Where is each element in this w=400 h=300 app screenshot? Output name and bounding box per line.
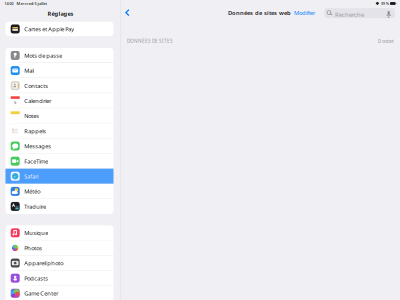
button[interactable]: Game Center [5,286,113,300]
staticText: Cartes et Apple Pay [24,25,74,33]
staticText: 39 % [381,1,389,6]
staticText: Rappels [24,127,46,135]
button[interactable]: Podcasts [5,271,113,286]
button[interactable]: Cartes et Apple Pay [5,22,113,36]
staticText: Photos [24,244,42,252]
staticText: Messages [24,142,51,150]
staticText: Podcasts [24,274,48,282]
staticText: Musique [24,229,48,237]
button[interactable]: FaceTime [5,154,113,169]
button[interactable]: Musique [5,225,113,240]
staticText: Modifier [294,9,315,17]
staticText: Données de sites web [228,9,291,17]
staticText: Game Center [24,289,58,297]
button[interactable]: Traduire [5,199,113,214]
staticText: Mail [24,67,34,74]
staticText: Contacts [24,82,48,89]
staticText: 0 octet [378,37,394,44]
staticText: Safari [24,172,38,180]
button[interactable]: Appareil photo [5,255,113,271]
button[interactable]: Notes [5,108,113,123]
staticText: Mots de passe [24,51,62,59]
button[interactable]: Safari [5,169,113,184]
button[interactable]: Retour [122,6,133,19]
staticText: Notes [24,112,39,120]
staticText: Calendrier [24,97,51,105]
button[interactable]: Mail [5,63,113,78]
button[interactable]: Photos [5,240,113,255]
staticText: Traduire [24,202,46,210]
staticText: Mercredi 5 juillet [16,1,46,6]
button[interactable]: Rappels [5,123,113,138]
button[interactable]: Mots de passe [5,48,113,63]
button[interactable]: 5 [5,93,113,108]
button[interactable]: Rechercher [324,8,395,18]
staticText: Réglages [47,10,73,17]
staticText: 5 [14,100,16,105]
staticText: 14:02 [4,1,13,6]
button[interactable]: Météo [5,184,113,199]
button[interactable]: Modifier [291,7,318,19]
staticText: Appareil photo [24,259,63,267]
staticText: Météo [24,187,40,195]
button[interactable]: Contacts [5,78,113,93]
staticText: DONNÉES DE SITES [127,38,173,44]
button[interactable]: Messages [5,138,113,154]
staticText: FaceTime [24,157,48,165]
staticText: Recherche [335,10,364,18]
